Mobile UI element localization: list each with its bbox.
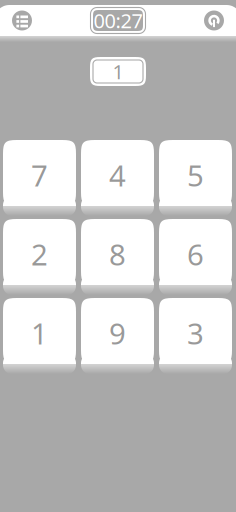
staticText: 00:27 [93,7,142,34]
staticText: 2 [31,234,48,274]
staticText: 1 [112,58,123,85]
staticText: 8 [109,234,126,274]
button[interactable]: 2 [3,219,76,285]
button[interactable]: 8 [81,219,154,285]
staticText: 1 [31,313,48,353]
button[interactable]: Restart [204,10,224,30]
button[interactable]: 9 [81,298,154,364]
button[interactable]: Menu [12,10,32,30]
staticText: 3 [187,313,204,353]
button[interactable]: 5 [159,140,232,206]
button[interactable]: 7 [3,140,76,206]
staticText: 9 [109,313,126,353]
staticText: 6 [187,234,204,274]
button[interactable]: 4 [81,140,154,206]
button[interactable]: 1 [3,298,76,364]
staticText: 5 [187,155,204,195]
staticText: 4 [109,155,126,195]
button[interactable]: 3 [159,298,232,364]
button[interactable]: 6 [159,219,232,285]
staticText: 7 [31,155,48,195]
